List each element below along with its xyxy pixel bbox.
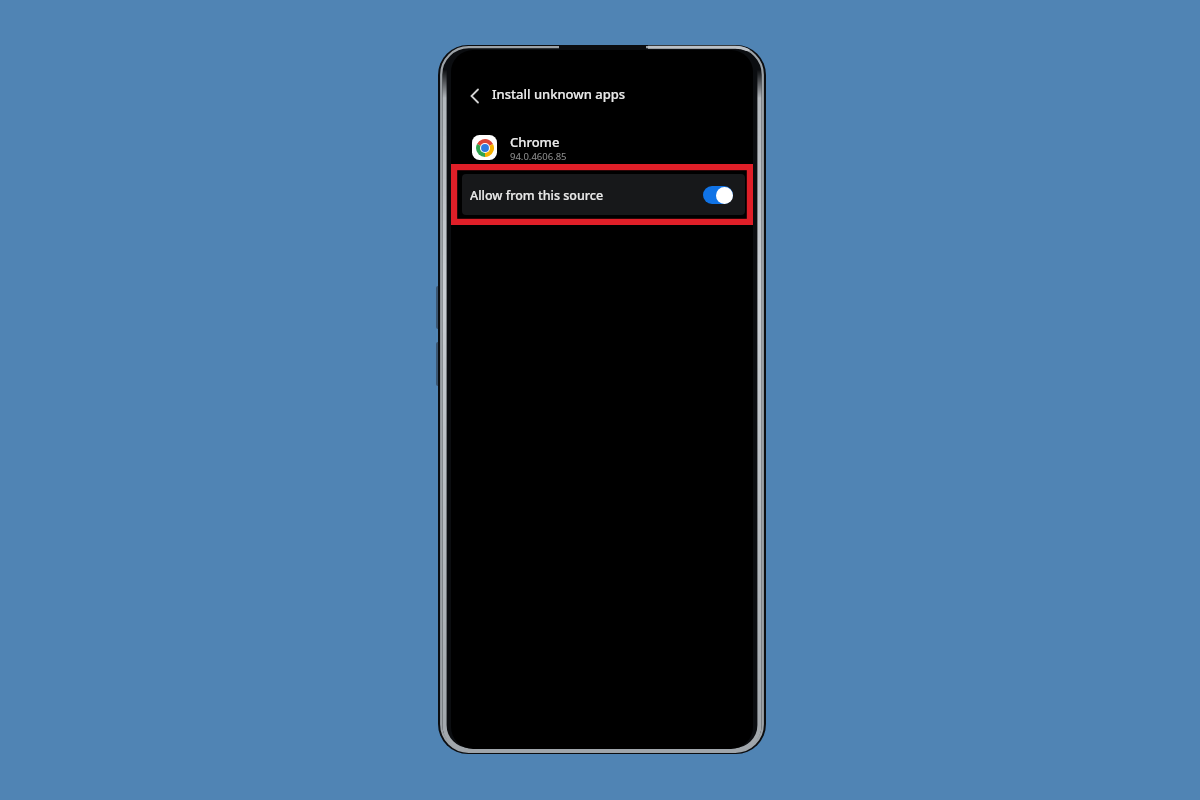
button[interactable]: Navigate up (464, 85, 486, 107)
staticText: Chrome (510, 133, 560, 151)
staticText: 94.0.4606.85 (510, 150, 567, 163)
staticText: Allow from this source (470, 187, 604, 204)
button[interactable]: Navigate up (451, 82, 753, 110)
button[interactable]: Allow from this source (462, 174, 745, 215)
button[interactable]: Chrome (451, 130, 753, 164)
staticText: Install unknown apps (492, 85, 626, 103)
button[interactable]: Volume up (436, 286, 441, 329)
button[interactable]: Volume down (436, 342, 441, 386)
button[interactable]: Allow from this source switch (703, 186, 733, 204)
